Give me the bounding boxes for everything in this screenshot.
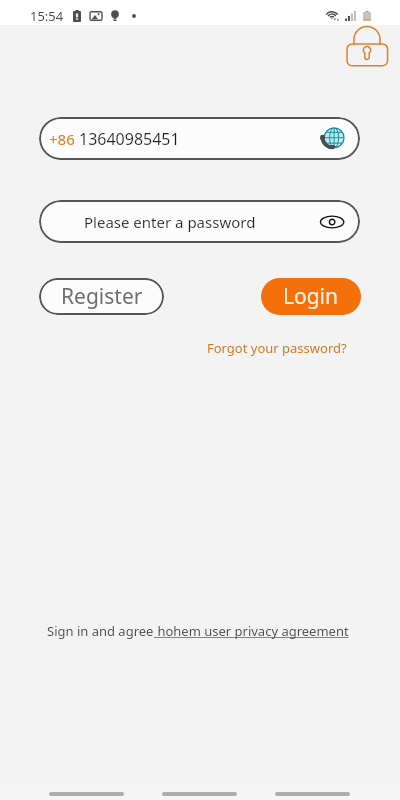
button[interactable]: Back: [49, 792, 124, 796]
button[interactable]: Please enter a password: [39, 200, 360, 243]
button[interactable]: hohem user privacy agreement: [154, 622, 353, 640]
staticText: Please enter a password: [84, 212, 256, 232]
button[interactable]: Show password: [319, 209, 345, 235]
staticText: hohem user privacy agreement: [154, 622, 353, 640]
staticText: +86: [49, 129, 75, 149]
button[interactable]: Home: [162, 792, 237, 796]
button[interactable]: Recents: [275, 792, 350, 796]
button[interactable]: Register: [39, 278, 164, 315]
button[interactable]: Forgot your password?: [203, 336, 351, 360]
staticText: 15:54: [30, 7, 64, 25]
staticText: Sign in and agree: [47, 622, 154, 640]
staticText: Forgot your password?: [207, 339, 347, 357]
button[interactable]: Select country code: [318, 125, 346, 153]
staticText: 13640985451: [79, 128, 180, 150]
staticText: Register: [61, 282, 143, 311]
button[interactable]: Lock: [346, 25, 388, 67]
button[interactable]: +86: [39, 117, 360, 160]
staticText: Login: [283, 282, 339, 311]
button[interactable]: Login: [261, 278, 361, 315]
